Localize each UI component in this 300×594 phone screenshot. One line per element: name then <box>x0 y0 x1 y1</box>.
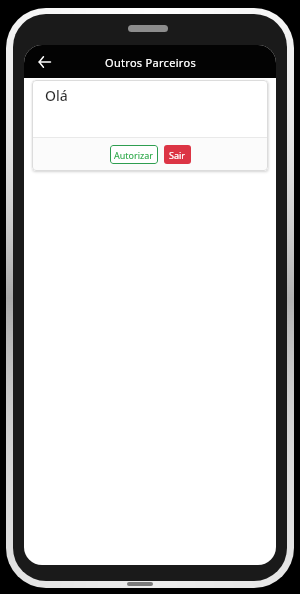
staticText: Sair <box>169 149 186 161</box>
button[interactable] <box>32 50 56 74</box>
button[interactable]: Autorizar <box>110 145 158 164</box>
button[interactable]: Sair <box>164 145 191 164</box>
staticText: Autorizar <box>114 149 154 161</box>
staticText: Olá <box>45 86 68 105</box>
staticText: Outros Parceiros <box>105 55 196 70</box>
